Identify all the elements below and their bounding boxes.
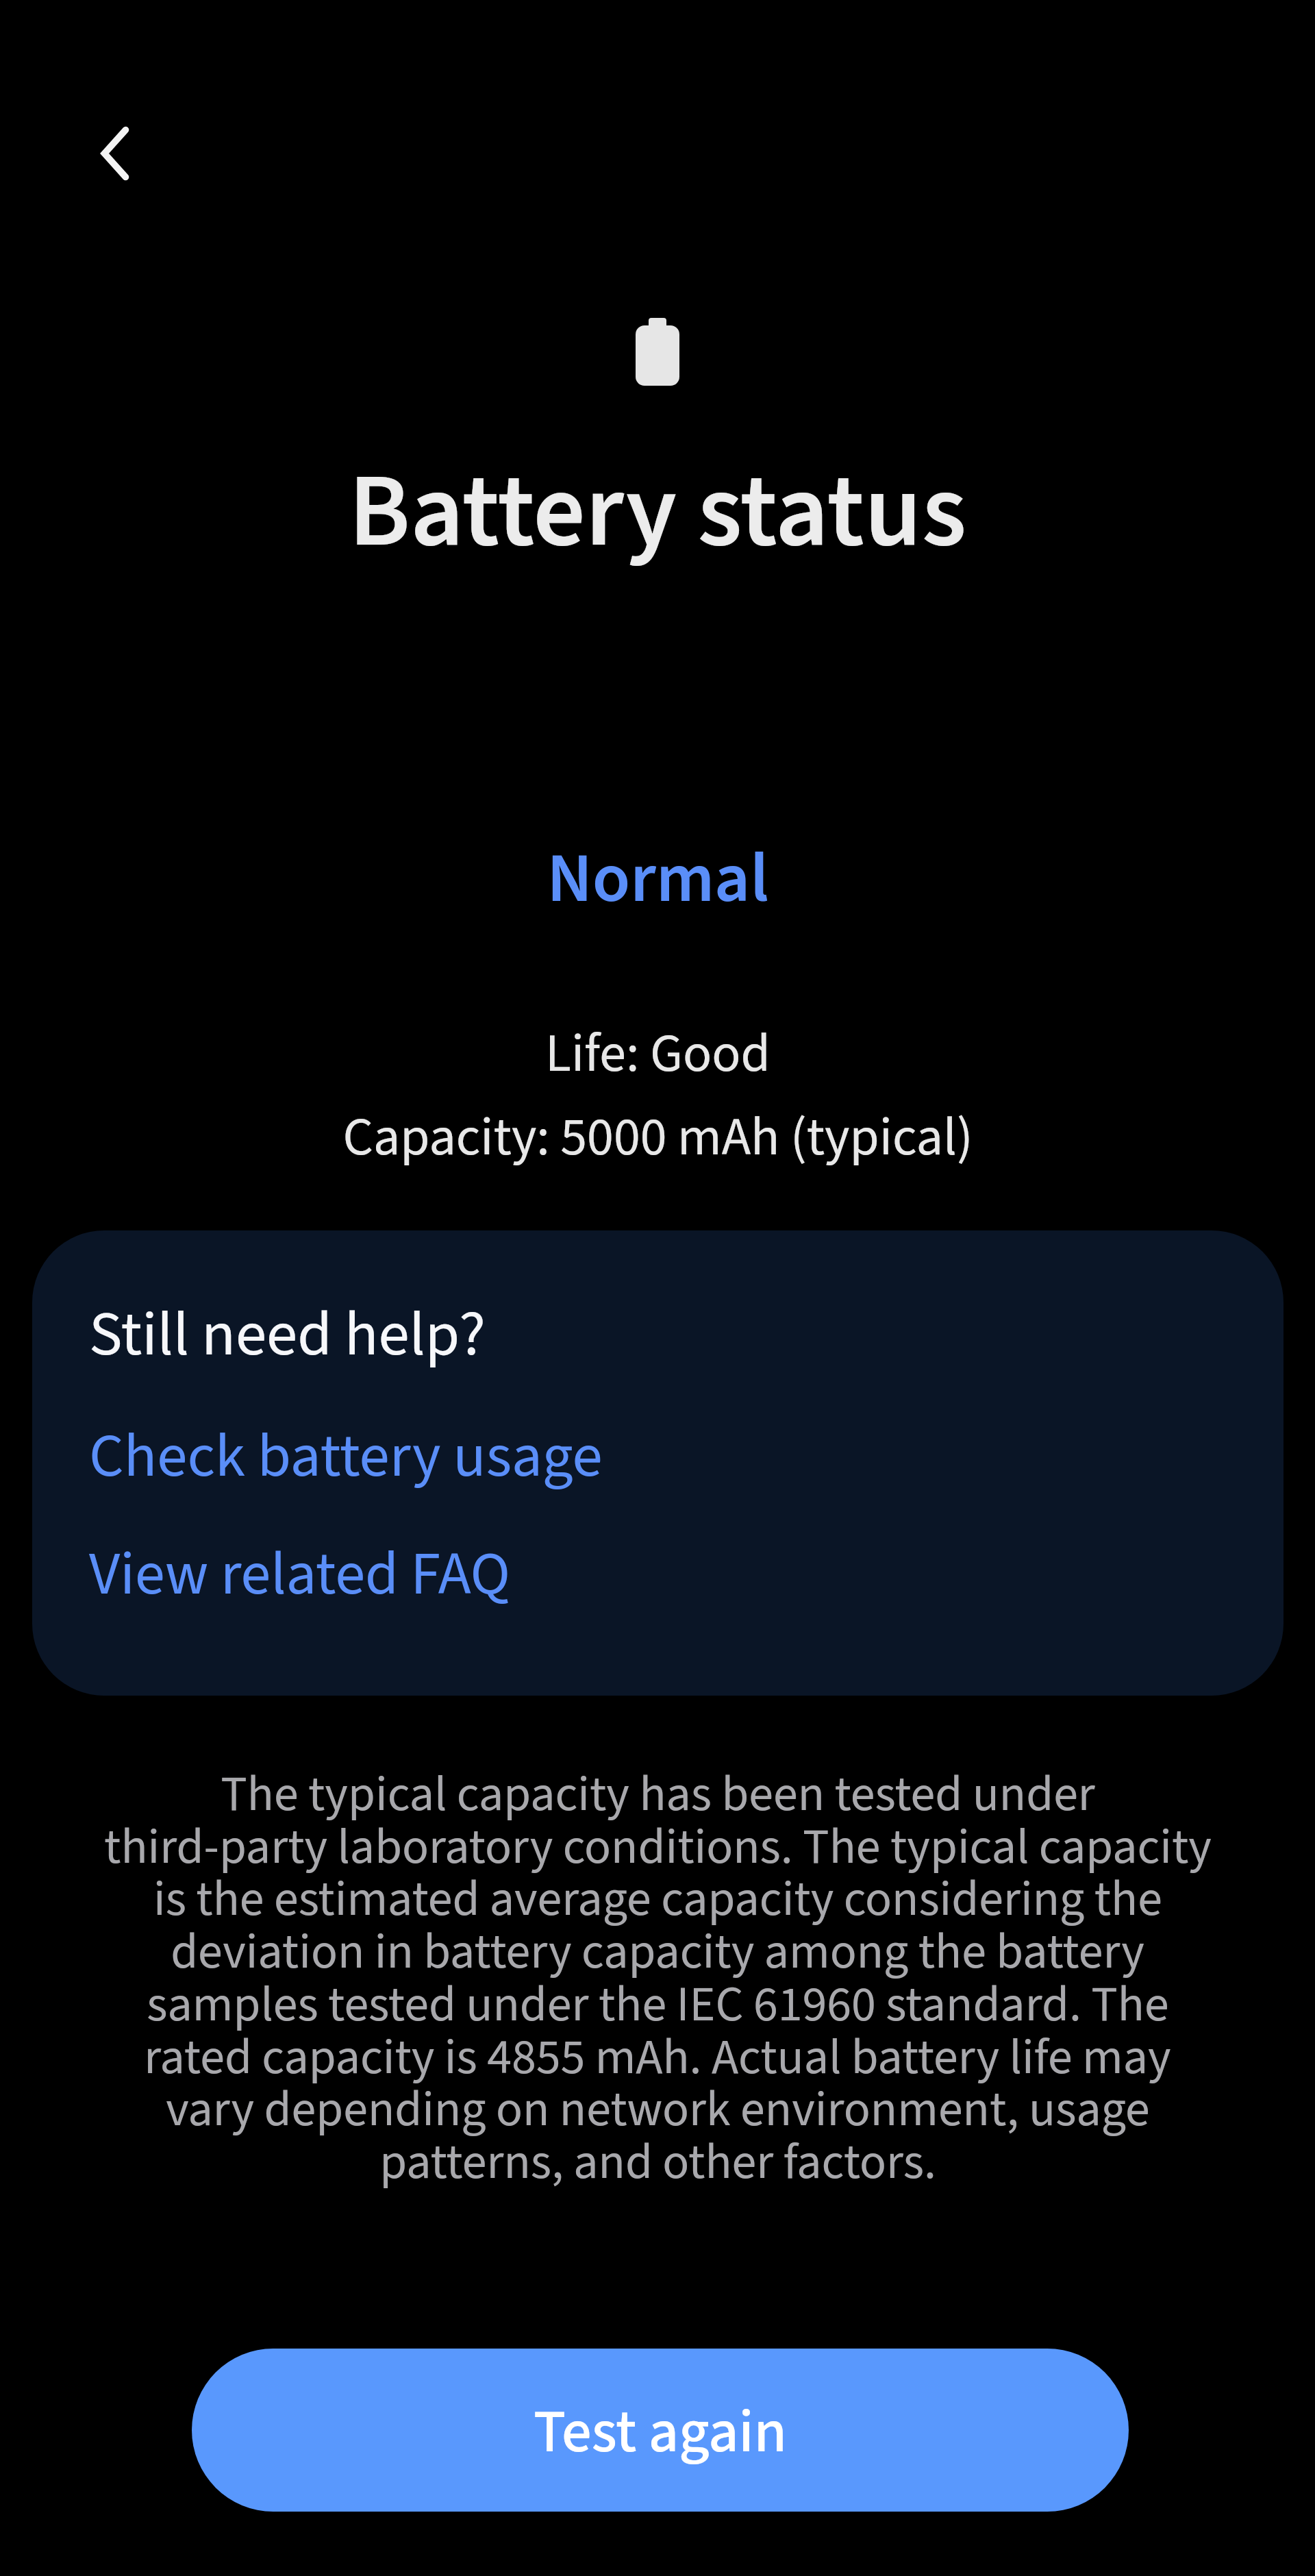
button[interactable]: Check battery usage — [32, 1398, 1283, 1501]
staticText: rated capacity is 4855 mAh. Actual batte… — [144, 2022, 1171, 2093]
staticText: third-party laboratory conditions. The t… — [104, 1812, 1212, 1883]
staticText: deviation in battery capacity among the … — [171, 1917, 1144, 1987]
button[interactable]: Back — [64, 102, 167, 205]
staticText: Normal — [547, 830, 769, 929]
staticText: Life: Good — [545, 1016, 771, 1092]
staticText: Check battery usage — [89, 1413, 603, 1500]
staticText: vary depending on network environment, u… — [166, 2075, 1150, 2145]
staticText: Test again — [534, 2390, 787, 2475]
staticText: patterns, and other factors. — [379, 2127, 936, 2198]
staticText: The typical capacity has been tested und… — [221, 1759, 1095, 1830]
staticText: Battery status — [349, 438, 966, 586]
staticText: View related FAQ — [89, 1532, 510, 1618]
staticText: Capacity: 5000 mAh (typical) — [342, 1100, 973, 1176]
staticText: is the estimated average capacity consid… — [153, 1864, 1162, 1935]
staticText: samples tested under the IEC 61960 stand… — [147, 1970, 1169, 2040]
button[interactable]: View related FAQ — [32, 1517, 1283, 1620]
button[interactable]: Test again — [192, 2349, 1129, 2512]
staticText: Still need help? — [89, 1291, 486, 1380]
